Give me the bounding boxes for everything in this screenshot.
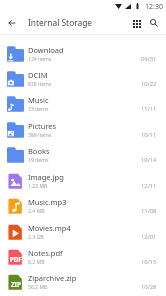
staticText: 12/01	[141, 233, 157, 241]
staticText: Image.jpg	[28, 172, 64, 182]
staticText: 6.2 MB	[28, 259, 45, 266]
staticText: 10/28	[141, 283, 157, 291]
staticText: Music	[28, 95, 49, 105]
staticText: 10/14	[141, 156, 157, 164]
staticText: 73 items	[28, 106, 49, 113]
staticText: 19 items	[28, 157, 49, 164]
button[interactable]: Grid view	[126, 12, 147, 34]
button[interactable]: Pictures	[0, 121, 166, 146]
staticText: PDF	[10, 255, 22, 263]
staticText: Pictures	[28, 121, 57, 131]
staticText: Internal Storage	[28, 17, 93, 28]
button[interactable]: Music	[0, 95, 166, 120]
button[interactable]: PDF	[0, 248, 166, 273]
staticText: Download	[28, 45, 64, 55]
staticText: 389 items	[28, 132, 52, 139]
staticText: 1.22 MB	[28, 183, 48, 190]
staticText: DCIM	[28, 70, 48, 80]
button[interactable]: ZIP	[0, 273, 166, 296]
button[interactable]: Download	[0, 45, 166, 70]
button[interactable]: Search	[143, 12, 164, 34]
button[interactable]: Music.mp3	[0, 197, 166, 222]
staticText: 10/22	[141, 80, 157, 88]
staticText: 09/31	[141, 55, 157, 63]
staticText: ZIP	[11, 280, 21, 288]
staticText: 11/08	[141, 207, 157, 215]
staticText: 124 items	[28, 56, 52, 63]
button[interactable]: Movies.mp4	[0, 223, 166, 248]
button[interactable]: Back	[2, 12, 22, 34]
staticText: 11/11	[141, 105, 157, 113]
staticText: 878 items	[28, 81, 52, 88]
staticText: Ziparchive.zip	[28, 273, 77, 283]
button[interactable]: Image.jpg	[0, 172, 166, 197]
staticText: 56.2 MB	[28, 284, 48, 291]
button[interactable]: DCIM	[0, 70, 166, 95]
staticText: 10/11	[141, 131, 157, 139]
staticText: Music.mp3	[28, 197, 67, 207]
button[interactable]: Books	[0, 146, 166, 171]
staticText: Movies.mp4	[28, 223, 71, 233]
staticText: 12:30	[145, 2, 163, 12]
staticText: Notes.pdf	[28, 248, 63, 258]
staticText: 12/11	[141, 182, 157, 190]
staticText: 2.4 MB	[28, 208, 45, 215]
staticText: 2.3 GB	[28, 234, 44, 241]
staticText: 10/15	[141, 258, 157, 266]
staticText: Books	[28, 146, 50, 156]
